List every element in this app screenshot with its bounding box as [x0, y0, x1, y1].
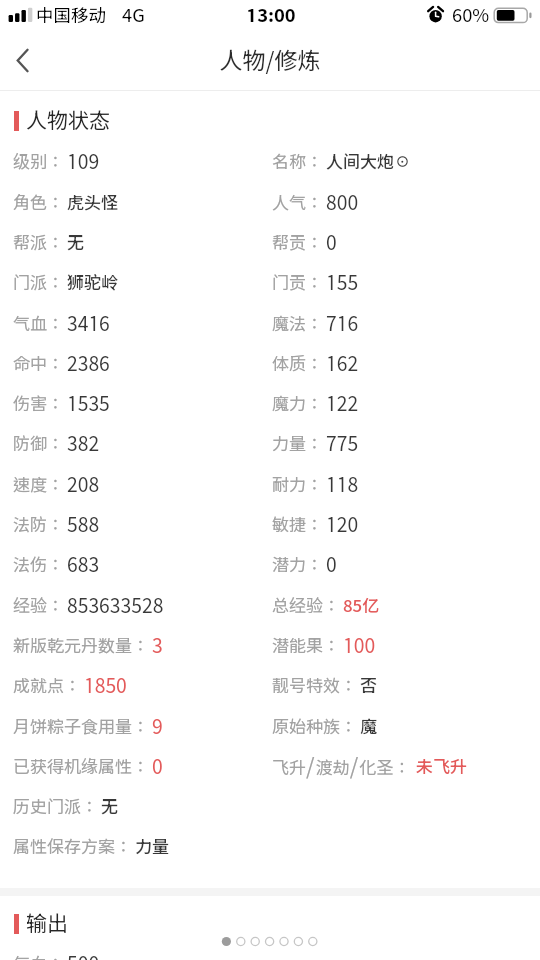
staticText: 飞升/渡劫/化圣：: [272, 753, 411, 779]
staticText: 虎头怪: [67, 193, 118, 213]
staticText: 已获得机缘属性：: [13, 757, 149, 777]
staticText: 208: [67, 473, 100, 496]
staticText: 月饼粽子食用量：: [13, 717, 149, 737]
staticText: 0: [326, 231, 337, 254]
staticText: 潜能果：: [272, 636, 340, 656]
staticText: 3416: [67, 312, 110, 335]
staticText: 历史门派：: [13, 797, 98, 817]
staticText: 敏捷：: [272, 515, 323, 535]
staticText: 角色：: [13, 193, 64, 213]
staticText: 2386: [67, 352, 110, 375]
staticText: 155: [326, 271, 359, 294]
staticText: 命中：: [13, 354, 64, 374]
staticText: 经验：: [13, 596, 64, 616]
staticText: 力量: [135, 837, 169, 857]
staticText: 162: [326, 352, 359, 375]
staticText: 新版乾元丹数量：: [13, 636, 149, 656]
staticText: 0: [152, 755, 163, 778]
staticText: 防御：: [13, 434, 64, 454]
staticText: 原始种族：: [272, 717, 357, 737]
staticText: 775: [326, 432, 359, 455]
staticText: 60%: [452, 4, 490, 26]
staticText: 门派：: [13, 273, 64, 293]
staticText: 122: [326, 392, 359, 415]
staticText: 85亿: [343, 596, 380, 616]
staticText: 中国移动: [36, 5, 106, 26]
staticText: 帮派：: [13, 233, 64, 253]
staticText: 耐力：: [272, 475, 323, 495]
staticText: 魔法：: [272, 314, 323, 334]
staticText: 500: [67, 952, 100, 960]
staticText: 魔: [360, 717, 377, 737]
staticText: 伤害：: [13, 394, 64, 414]
staticText: 气血：: [13, 314, 64, 334]
staticText: 0: [326, 553, 337, 576]
staticText: 力量：: [272, 434, 323, 454]
staticText: 气血：: [13, 954, 64, 960]
staticText: 109: [67, 150, 100, 173]
staticText: 100: [343, 634, 376, 657]
staticText: 1535: [67, 392, 110, 415]
staticText: 体质：: [272, 354, 323, 374]
staticText: 716: [326, 312, 359, 335]
staticText: 潜力：: [272, 555, 323, 575]
staticText: 法防：: [13, 515, 64, 535]
staticText: 无: [101, 797, 118, 817]
staticText: 级别：: [13, 152, 64, 172]
staticText: 683: [67, 553, 100, 576]
staticText: 588: [67, 513, 100, 536]
staticText: 未飞升: [416, 757, 467, 777]
staticText: 1850: [84, 674, 127, 697]
staticText: 帮贡：: [272, 233, 323, 253]
staticText: 法伤：: [13, 555, 64, 575]
staticText: 无: [67, 233, 84, 253]
staticText: 118: [326, 473, 359, 496]
staticText: 人间大炮☉: [326, 152, 411, 172]
staticText: 成就点：: [13, 676, 81, 696]
staticText: 120: [326, 513, 359, 536]
staticText: 800: [326, 191, 359, 214]
staticText: 4G: [122, 4, 145, 26]
staticText: 人气：: [272, 193, 323, 213]
staticText: 输出: [26, 911, 68, 936]
staticText: 13:00: [1, 4, 540, 26]
staticText: 人物状态: [26, 108, 110, 133]
staticText: 门贡：: [272, 273, 323, 293]
staticText: 9: [152, 715, 163, 738]
staticText: 属性保存方案：: [13, 837, 132, 857]
staticText: 靓号特效：: [272, 676, 357, 696]
staticText: 382: [67, 432, 100, 455]
staticText: 魔力：: [272, 394, 323, 414]
staticText: 853633528: [67, 594, 164, 617]
staticText: 狮驼岭: [67, 273, 118, 293]
staticText: 名称：: [272, 152, 323, 172]
staticText: 否: [360, 676, 377, 696]
staticText: 3: [152, 634, 163, 657]
staticText: 人物/修炼: [0, 47, 540, 74]
button[interactable]: Back: [0, 34, 52, 86]
staticText: 总经验：: [272, 596, 340, 616]
staticText: 速度：: [13, 475, 64, 495]
